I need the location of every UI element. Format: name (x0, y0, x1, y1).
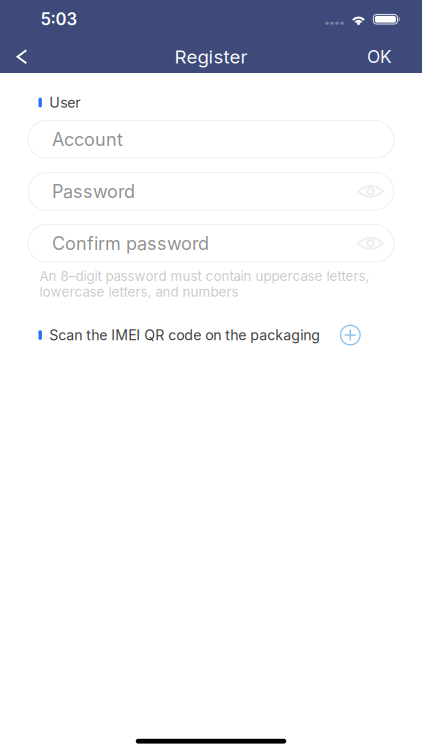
button[interactable]: Confirm password (28, 225, 394, 262)
staticText: Account (52, 128, 123, 150)
button[interactable]: OK (349, 42, 422, 71)
staticText: An 8–digit password must contain upperca… (39, 268, 369, 284)
button[interactable]: Account (28, 121, 394, 158)
staticText: Register (174, 45, 247, 68)
staticText: User (49, 94, 80, 111)
staticText: Password (52, 180, 135, 202)
staticText: Confirm password (52, 232, 209, 254)
button[interactable]: Scan IMEI QR code (340, 325, 360, 345)
staticText: 5:03 (40, 9, 77, 29)
staticText: lowercase letters, and numbers (39, 284, 238, 300)
button[interactable]: Back (0, 42, 45, 71)
staticText: OK (367, 46, 392, 67)
staticText: Scan the IMEI QR code on the packaging (49, 326, 320, 344)
button[interactable]: Password (28, 173, 394, 210)
